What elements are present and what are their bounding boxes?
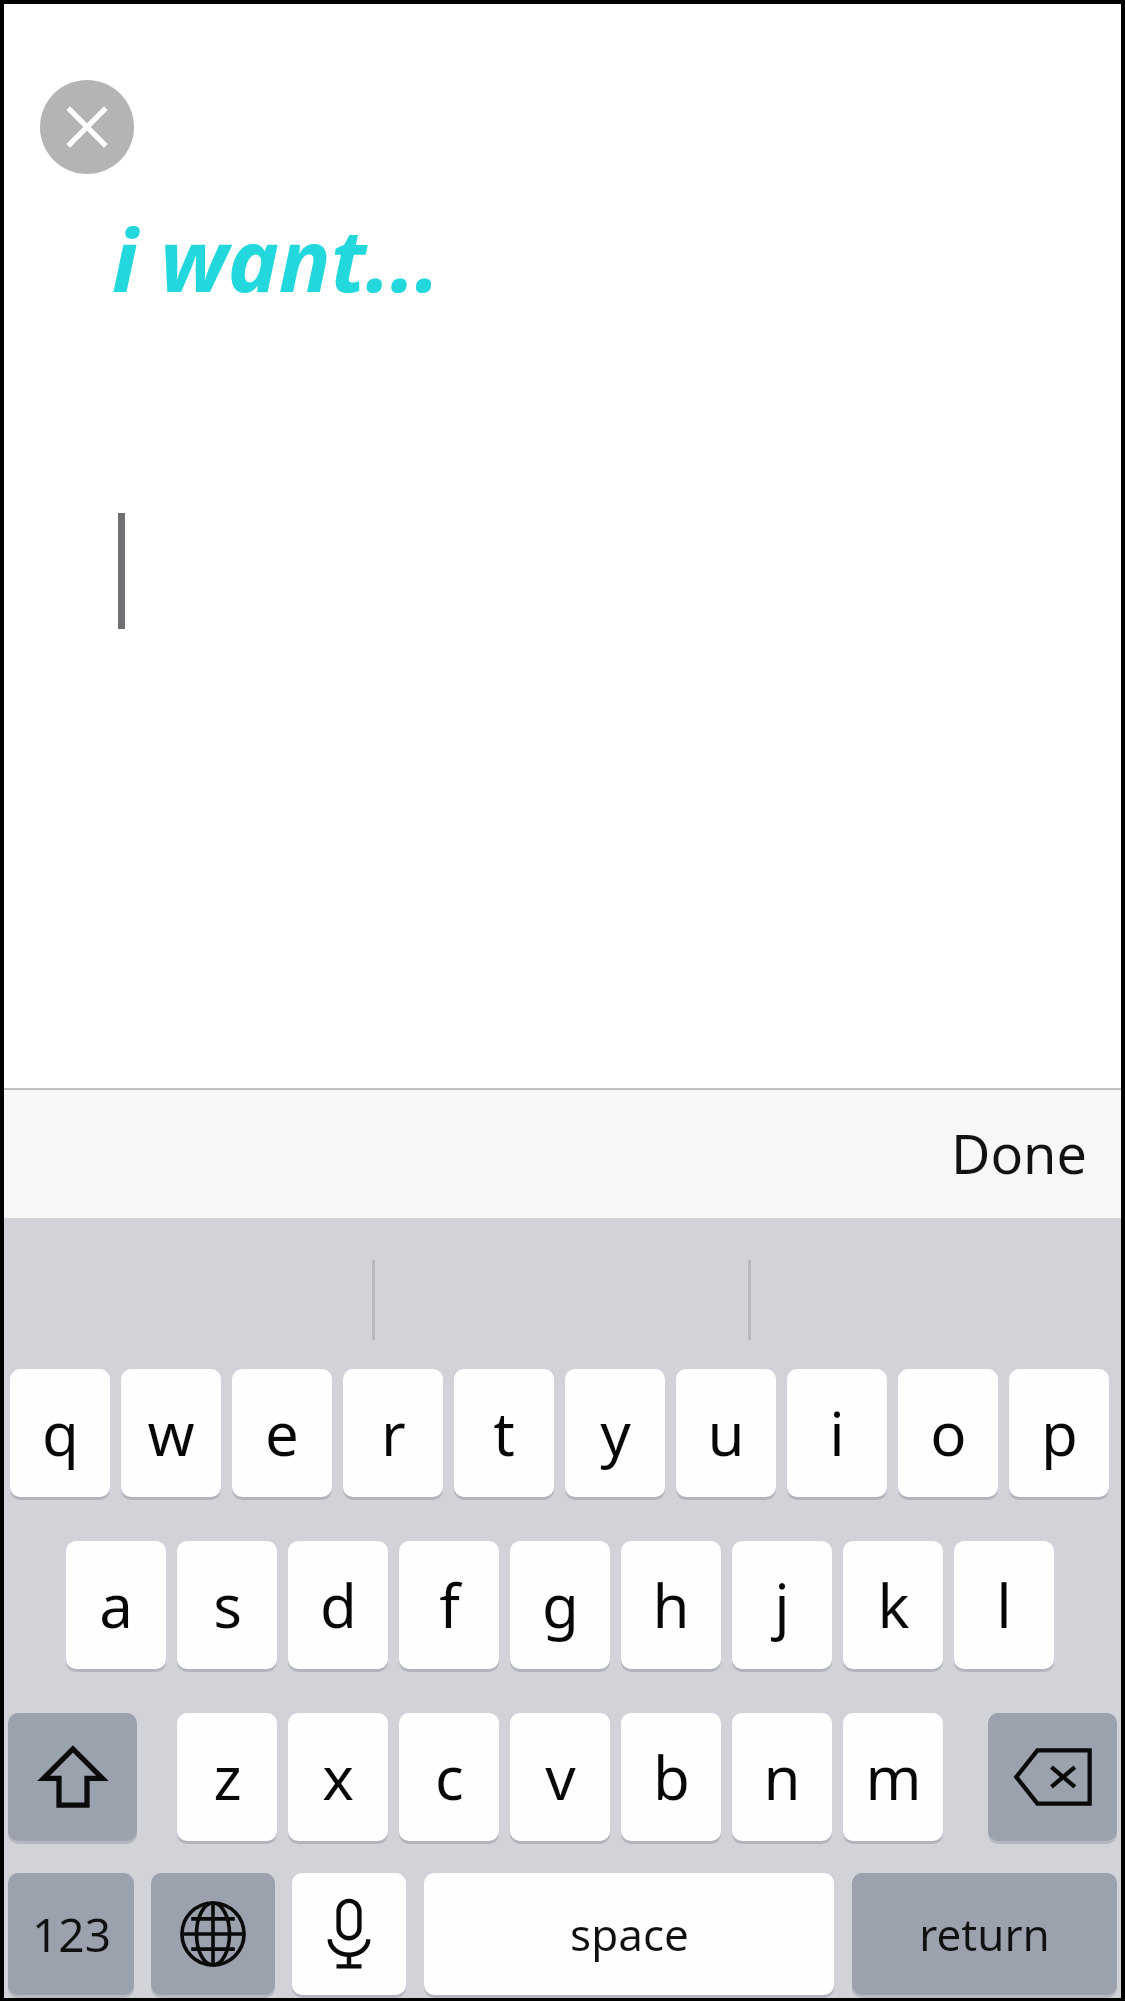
staticText: s <box>213 1564 242 1646</box>
staticText: h <box>652 1564 690 1646</box>
staticText: k <box>877 1564 910 1646</box>
button[interactable]: Close <box>40 80 134 174</box>
button[interactable]: b <box>621 1713 721 1841</box>
button[interactable]: m <box>843 1713 943 1841</box>
button[interactable]: h <box>621 1541 721 1669</box>
button[interactable]: w <box>121 1369 221 1497</box>
button[interactable]: g <box>510 1541 610 1669</box>
button[interactable]: Change language <box>151 1873 275 1995</box>
staticText: v <box>545 1736 576 1818</box>
staticText: i <box>829 1392 845 1474</box>
button[interactable]: p <box>1009 1369 1109 1497</box>
button[interactable]: t <box>454 1369 554 1497</box>
button[interactable]: space <box>424 1873 834 1995</box>
staticText: p <box>1041 1392 1078 1474</box>
staticText: l <box>996 1564 1012 1646</box>
staticText: n <box>763 1736 801 1818</box>
button[interactable]: f <box>399 1541 499 1669</box>
button[interactable]: e <box>232 1369 332 1497</box>
staticText: r <box>381 1392 406 1474</box>
staticText: q <box>42 1392 79 1474</box>
staticText: z <box>213 1736 242 1818</box>
staticText: g <box>542 1564 579 1646</box>
button[interactable]: return <box>852 1873 1117 1995</box>
button[interactable]: u <box>676 1369 776 1497</box>
button[interactable]: s <box>177 1541 277 1669</box>
staticText: return <box>919 1904 1050 1964</box>
staticText: u <box>707 1392 745 1474</box>
staticText: b <box>653 1736 690 1818</box>
button[interactable]: Numbers <box>8 1873 134 1995</box>
button[interactable]: Done <box>935 1104 1103 1202</box>
staticText: t <box>493 1392 515 1474</box>
staticText: j <box>774 1564 790 1646</box>
button[interactable]: y <box>565 1369 665 1497</box>
staticText: w <box>147 1392 195 1474</box>
staticText: i want... <box>112 200 441 317</box>
staticText: c <box>435 1736 464 1818</box>
staticText: m <box>865 1736 922 1818</box>
button[interactable]: q <box>10 1369 110 1497</box>
button[interactable]: j <box>732 1541 832 1669</box>
button[interactable]: Dictate <box>292 1873 406 1995</box>
staticText: Done <box>951 1116 1087 1190</box>
staticText: x <box>322 1736 354 1818</box>
staticText: space <box>570 1904 689 1964</box>
button[interactable]: x <box>288 1713 388 1841</box>
staticText: f <box>439 1564 460 1646</box>
button[interactable]: l <box>954 1541 1054 1669</box>
button[interactable]: z <box>177 1713 277 1841</box>
staticText: d <box>320 1564 357 1646</box>
staticText: 123 <box>32 1903 111 1966</box>
button[interactable]: Backspace <box>988 1713 1117 1841</box>
button[interactable]: k <box>843 1541 943 1669</box>
button[interactable]: n <box>732 1713 832 1841</box>
button[interactable]: i <box>787 1369 887 1497</box>
button[interactable]: r <box>343 1369 443 1497</box>
staticText: o <box>930 1392 967 1474</box>
button[interactable]: Shift <box>8 1713 137 1841</box>
staticText: e <box>265 1392 299 1474</box>
button[interactable]: o <box>898 1369 998 1497</box>
button[interactable]: a <box>66 1541 166 1669</box>
button[interactable]: c <box>399 1713 499 1841</box>
button[interactable]: d <box>288 1541 388 1669</box>
button[interactable]: v <box>510 1713 610 1841</box>
staticText: a <box>99 1564 133 1646</box>
staticText: y <box>600 1392 631 1474</box>
